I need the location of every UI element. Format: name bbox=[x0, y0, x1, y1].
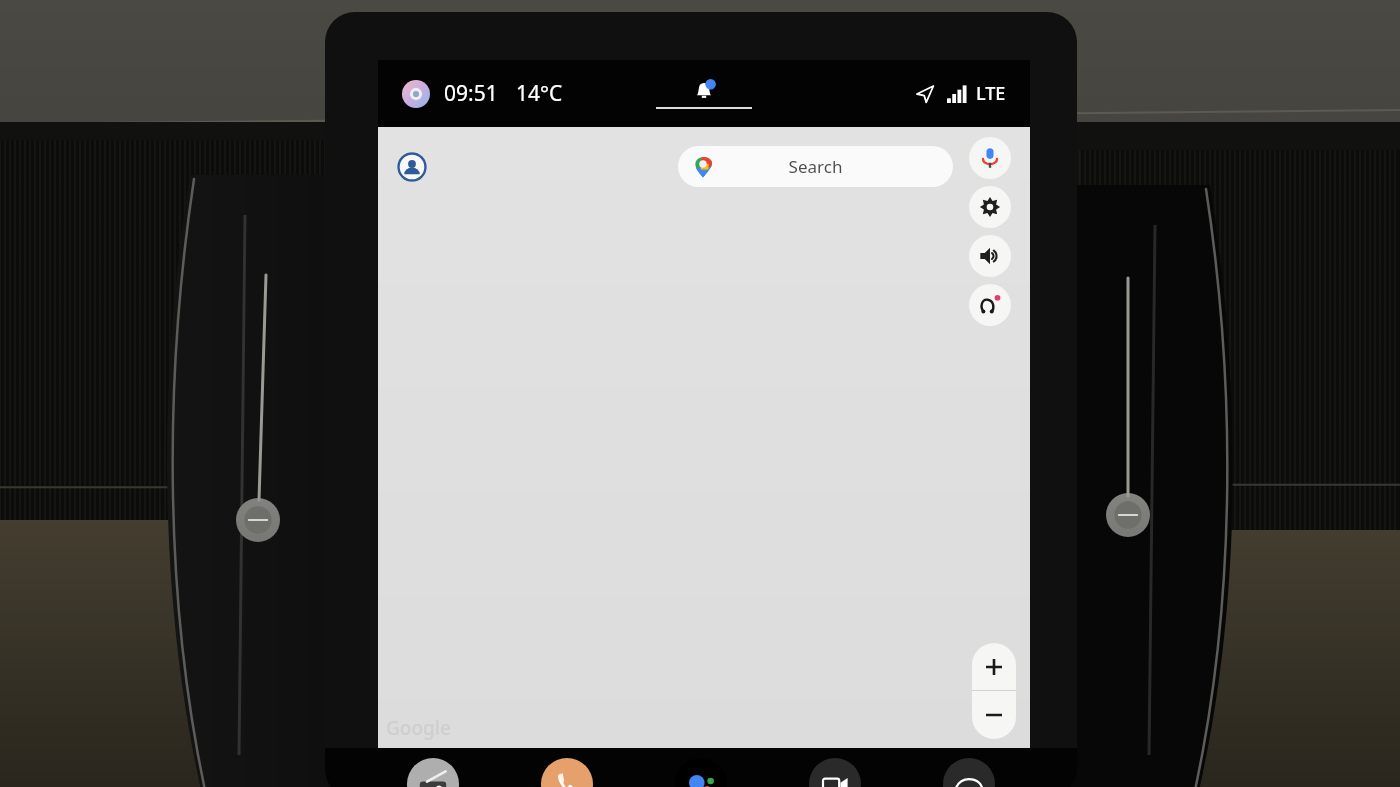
staticText: LTE bbox=[976, 81, 1006, 106]
button[interactable]: Route options bbox=[969, 284, 1011, 326]
staticText: 14°C bbox=[516, 79, 563, 108]
button[interactable]: Voice search bbox=[969, 137, 1011, 179]
staticText: Google bbox=[386, 715, 451, 741]
button[interactable]: Notifications bbox=[616, 79, 792, 109]
staticText: Search bbox=[714, 155, 917, 178]
button[interactable]: Account bbox=[394, 149, 430, 185]
button[interactable]: Zoom out bbox=[972, 691, 1016, 739]
button[interactable]: Vehicle bbox=[943, 758, 995, 787]
button[interactable]: Search bbox=[678, 146, 953, 187]
button[interactable]: Dashcam bbox=[809, 758, 861, 787]
button[interactable]: Phone bbox=[541, 758, 593, 787]
button[interactable]: Settings bbox=[969, 186, 1011, 228]
button[interactable]: Zoom in bbox=[972, 643, 1016, 690]
staticText: 09:51 bbox=[444, 79, 498, 108]
button[interactable]: Radio bbox=[407, 758, 459, 787]
button[interactable]: Sound bbox=[969, 235, 1011, 277]
button[interactable]: Assistant bbox=[675, 758, 727, 787]
